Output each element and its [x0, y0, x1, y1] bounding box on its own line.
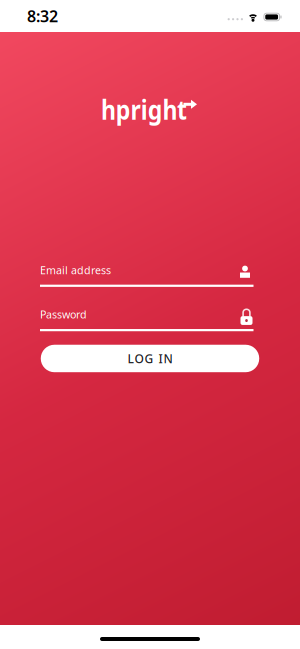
staticText: hpright	[101, 92, 201, 127]
button[interactable]: LOG IN	[41, 345, 259, 372]
staticText: LOG IN	[127, 350, 172, 366]
button[interactable]: Email address	[43, 263, 257, 287]
staticText: Password	[40, 307, 87, 322]
staticText: Email address	[40, 263, 111, 277]
staticText: 8:32	[27, 5, 58, 27]
button[interactable]: Password	[43, 307, 257, 331]
